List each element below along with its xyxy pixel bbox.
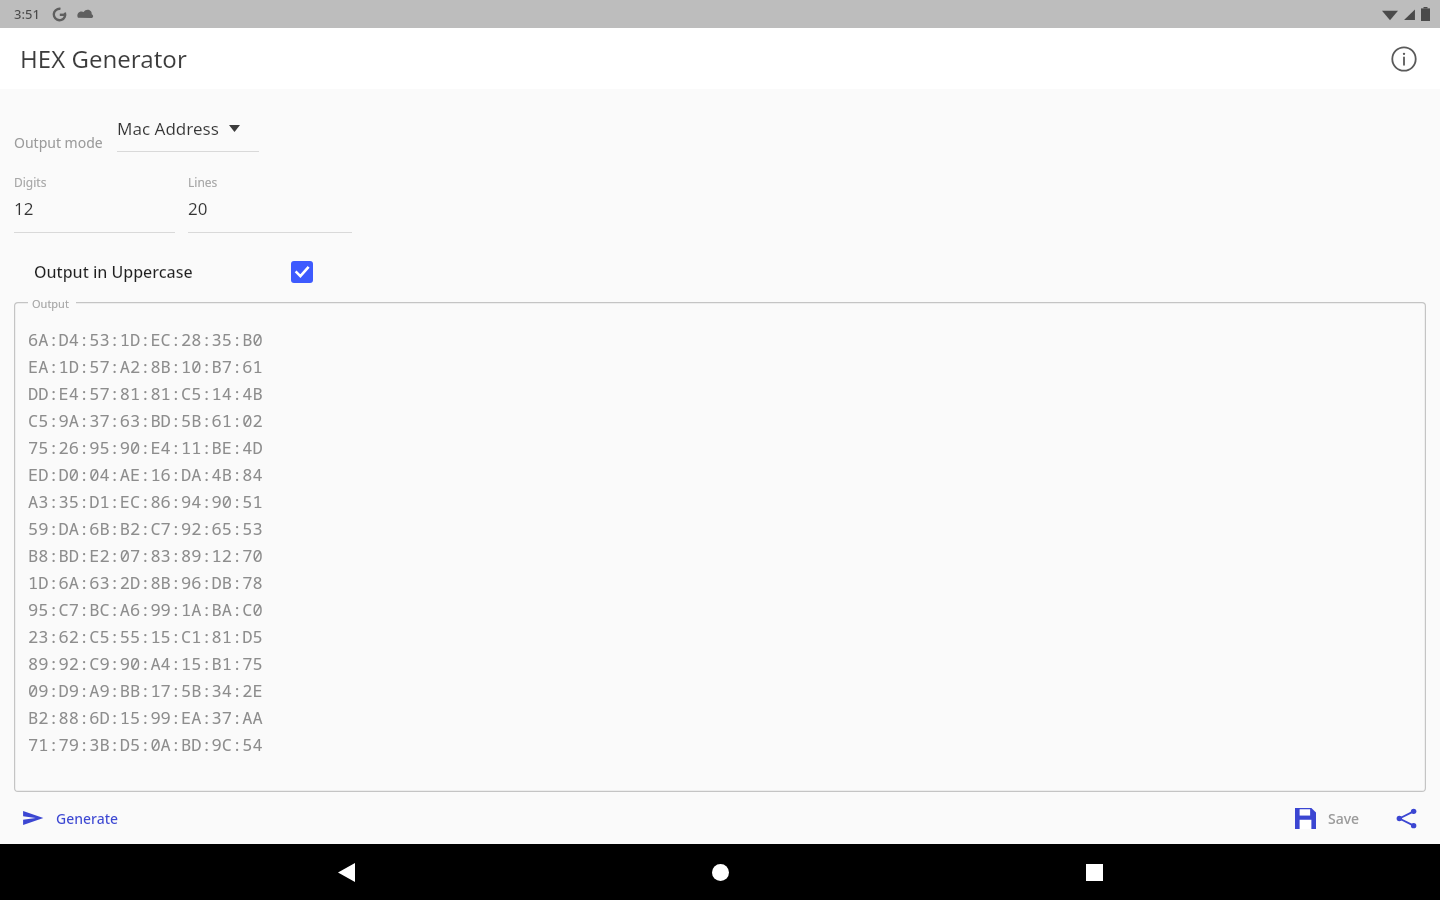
staticText: HEX Generator: [20, 42, 187, 75]
staticText: Lines: [188, 174, 218, 190]
button[interactable]: Lines: [188, 174, 352, 233]
button[interactable]: Home: [692, 844, 748, 900]
staticText: 09:D9:A9:BB:17:5B:34:2E: [28, 679, 263, 702]
staticText: B8:BD:E2:07:83:89:12:70: [28, 544, 263, 567]
button[interactable]: Mac Address: [117, 117, 259, 152]
staticText: 89:92:C9:90:A4:15:B1:75: [28, 652, 263, 675]
staticText: 1D:6A:63:2D:8B:96:DB:78: [28, 571, 263, 594]
staticText: C5:9A:37:63:BD:5B:61:02: [28, 409, 263, 432]
button[interactable]: Back: [318, 844, 374, 900]
staticText: 95:C7:BC:A6:99:1A:BA:C0: [28, 598, 263, 621]
staticText: 59:DA:6B:B2:C7:92:65:53: [28, 517, 263, 540]
staticText: 23:62:C5:55:15:C1:81:D5: [28, 625, 263, 648]
staticText: B2:88:6D:15:99:EA:37:AA: [28, 706, 263, 729]
staticText: Save: [1328, 809, 1360, 828]
button[interactable]: Generate: [14, 801, 127, 835]
staticText: DD:E4:57:81:81:C5:14:4B: [28, 382, 263, 405]
staticText: 20: [188, 197, 208, 220]
button[interactable]: Digits: [14, 174, 175, 233]
staticText: Mac Address: [117, 117, 219, 140]
staticText: Output in Uppercase: [34, 261, 193, 283]
button[interactable]: Info: [1382, 37, 1426, 81]
staticText: Digits: [14, 174, 47, 190]
staticText: EA:1D:57:A2:8B:10:B7:61: [28, 355, 263, 378]
staticText: 6A:D4:53:1D:EC:28:35:B0: [28, 328, 263, 351]
button[interactable]: Share: [1386, 798, 1426, 838]
button[interactable]: Output in Uppercase: [14, 250, 1440, 294]
staticText: 3:51: [14, 5, 40, 23]
button[interactable]: Save: [1287, 802, 1368, 835]
staticText: Output: [32, 296, 69, 311]
staticText: 75:26:95:90:E4:11:BE:4D: [28, 436, 263, 459]
button[interactable]: Recents: [1066, 844, 1122, 900]
staticText: ED:D0:04:AE:16:DA:4B:84: [28, 463, 263, 486]
staticText: 71:79:3B:D5:0A:BD:9C:54: [28, 733, 263, 756]
staticText: A3:35:D1:EC:86:94:90:51: [28, 490, 263, 513]
staticText: 12: [14, 197, 34, 220]
staticText: Generate: [56, 809, 119, 828]
staticText: Output mode: [14, 133, 103, 152]
